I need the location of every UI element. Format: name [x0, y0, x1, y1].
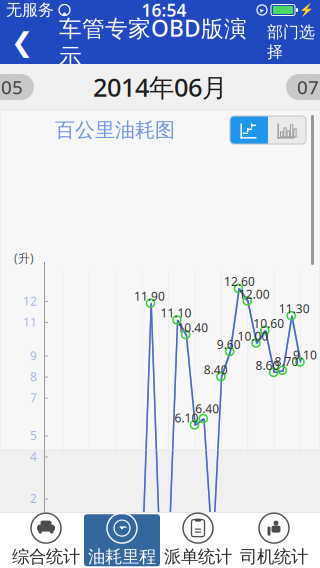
staticText: 3	[59, 561, 67, 568]
staticText: 派单统计	[164, 546, 232, 567]
staticText: (升)	[14, 250, 34, 266]
button[interactable]: 05	[4, 74, 48, 100]
button[interactable]: 返回	[0, 20, 44, 64]
staticText: 9.60	[217, 336, 241, 352]
staticText: 9.10	[293, 347, 317, 363]
staticText: 27	[266, 561, 282, 568]
staticText: 7	[30, 390, 37, 405]
button[interactable]: 油耗里程	[84, 514, 160, 566]
staticText: 8.60	[256, 357, 280, 373]
staticText: 10.60	[253, 315, 284, 331]
staticText: 综合统计	[12, 546, 80, 567]
staticText: 6.10	[174, 410, 198, 426]
staticText: 30	[292, 561, 308, 568]
button[interactable]: 综合统计	[8, 514, 84, 566]
staticText: 4	[30, 448, 37, 464]
staticText: ▸	[260, 5, 264, 15]
staticText: 24	[239, 561, 255, 568]
staticText: 6	[85, 561, 93, 568]
staticText: 21	[213, 561, 229, 568]
button[interactable]: 部门选择	[262, 20, 320, 64]
staticText: 6.40	[195, 401, 219, 416]
button[interactable]: 柱状图	[268, 116, 306, 144]
staticText: 12.60	[224, 273, 255, 289]
staticText: 12	[23, 293, 37, 309]
staticText: 16:54	[141, 0, 186, 21]
staticText: 12.00	[239, 286, 270, 302]
staticText: 15	[160, 561, 176, 568]
staticText: 9	[30, 348, 37, 363]
staticText: 10.00	[237, 328, 268, 344]
staticText: 部门选择	[267, 22, 315, 62]
button[interactable]: 折线图	[230, 116, 268, 144]
staticText: ⚡	[299, 3, 314, 17]
button[interactable]: 07	[272, 74, 316, 100]
staticText: 5	[30, 427, 37, 443]
staticText: 10.40	[177, 320, 208, 335]
staticText: 2	[30, 490, 37, 506]
staticText: 车管专家OBD版演示	[59, 13, 247, 71]
staticText: 8.40	[204, 362, 228, 377]
staticText: 8.70	[274, 353, 298, 369]
button[interactable]: 派单统计	[160, 514, 236, 566]
staticText: 百公里油耗图	[55, 118, 175, 142]
staticText: 司机统计	[240, 546, 308, 567]
staticText: 07	[297, 75, 319, 99]
staticText: 1	[30, 511, 37, 527]
staticText: 油耗里程	[88, 546, 156, 567]
staticText: 11.10	[160, 305, 191, 321]
staticText: 9	[111, 561, 119, 568]
staticText: 11	[23, 314, 37, 330]
staticText: 8	[30, 369, 37, 384]
staticText: 11.90	[134, 288, 165, 304]
staticText: 0	[30, 545, 37, 561]
staticText: 无服务	[6, 0, 54, 20]
staticText: 18	[186, 561, 202, 568]
staticText: 2014年06月	[93, 70, 227, 104]
staticText: 12	[134, 561, 150, 568]
staticText: 05	[1, 75, 23, 99]
staticText: 11.30	[279, 301, 310, 317]
staticText: ❮	[11, 27, 33, 57]
button[interactable]: 司机统计	[236, 514, 312, 566]
